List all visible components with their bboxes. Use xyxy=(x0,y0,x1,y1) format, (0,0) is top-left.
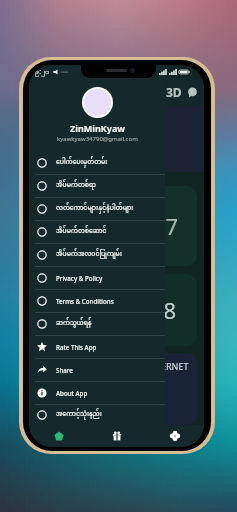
button[interactable]: Lucky xyxy=(146,425,204,447)
staticText: အိပ်မက်တစ်ရာ xyxy=(56,179,97,193)
button[interactable]: Messages xyxy=(187,87,198,98)
staticText: အိပ်မက်တစ်ဆောင် xyxy=(56,225,107,239)
staticText: ၉:၂၀ xyxy=(35,66,50,78)
staticText: ZinMinKyaw xyxy=(70,122,125,134)
button[interactable]: Privacy & Policy xyxy=(29,267,165,290)
staticText: kyawkyaw34790@gmail.com xyxy=(57,135,138,143)
button[interactable]: အကောင့်သုံးနည်း xyxy=(29,405,165,426)
button[interactable]: Home xyxy=(29,425,88,447)
button[interactable]: Share xyxy=(29,359,165,382)
staticText: လတ်ကောင်များနှင့်နံပါတ်များ xyxy=(56,202,134,216)
staticText: ERNET xyxy=(161,360,189,372)
staticText: 97 xyxy=(153,211,179,241)
button[interactable]: ဆက်သွယ်ရန် xyxy=(29,313,165,336)
button[interactable]: Gifts xyxy=(88,425,146,447)
button[interactable]: ပေါက်ပေးမှတ်တမ်း xyxy=(29,152,165,175)
button[interactable]: Rate This App xyxy=(29,336,165,359)
button[interactable]: Terms & Conditions xyxy=(29,290,165,313)
button[interactable]: Profile photo xyxy=(84,89,111,116)
button[interactable]: အိပ်မက်တစ်ဆောင် xyxy=(29,221,165,244)
button[interactable]: လတ်ကောင်များနှင့်နံပါတ်များ xyxy=(29,198,165,221)
button[interactable]: အိပ်မက်အလ၀င်ပြုကျမ်း xyxy=(29,244,165,267)
staticText: 08 xyxy=(151,295,177,325)
staticText: အိပ်မက်အလ၀င်ပြုကျမ်း xyxy=(56,248,123,262)
staticText: Privacy & Policy xyxy=(56,274,103,282)
staticText: Share xyxy=(56,366,73,374)
staticText: Terms & Conditions xyxy=(56,297,114,305)
staticText: ပေါက်ပေးမှတ်တမ်း xyxy=(56,156,108,170)
staticText: အကောင့်သုံးနည်း xyxy=(56,408,102,422)
staticText: About App xyxy=(56,389,88,397)
staticText: 3D xyxy=(166,84,182,100)
button[interactable]: အိပ်မက်တစ်ရာ xyxy=(29,175,165,198)
staticText: ဆက်သွယ်ရန် xyxy=(56,317,92,331)
staticText: Rate This App xyxy=(56,343,97,351)
button[interactable]: About App xyxy=(29,382,165,405)
